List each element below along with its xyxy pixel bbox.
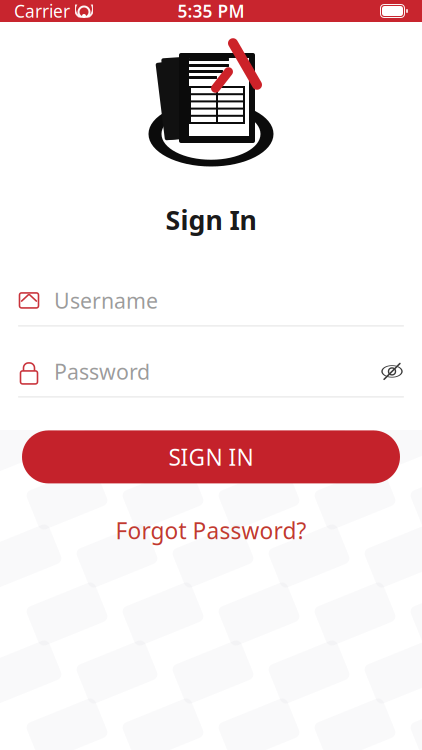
staticText: Forgot Password?: [115, 515, 306, 545]
staticText: Carrier: [14, 0, 70, 22]
staticText: SIGN IN: [168, 442, 253, 472]
staticText: Sign In: [165, 202, 256, 237]
button[interactable]: Forgot Password?: [99, 507, 322, 553]
staticText: 5:35 PM: [177, 0, 244, 22]
staticText: Username: [54, 286, 158, 314]
button[interactable]: SIGN IN: [22, 430, 400, 483]
button[interactable]: Password: [0, 354, 422, 397]
staticText: Password: [54, 357, 150, 385]
